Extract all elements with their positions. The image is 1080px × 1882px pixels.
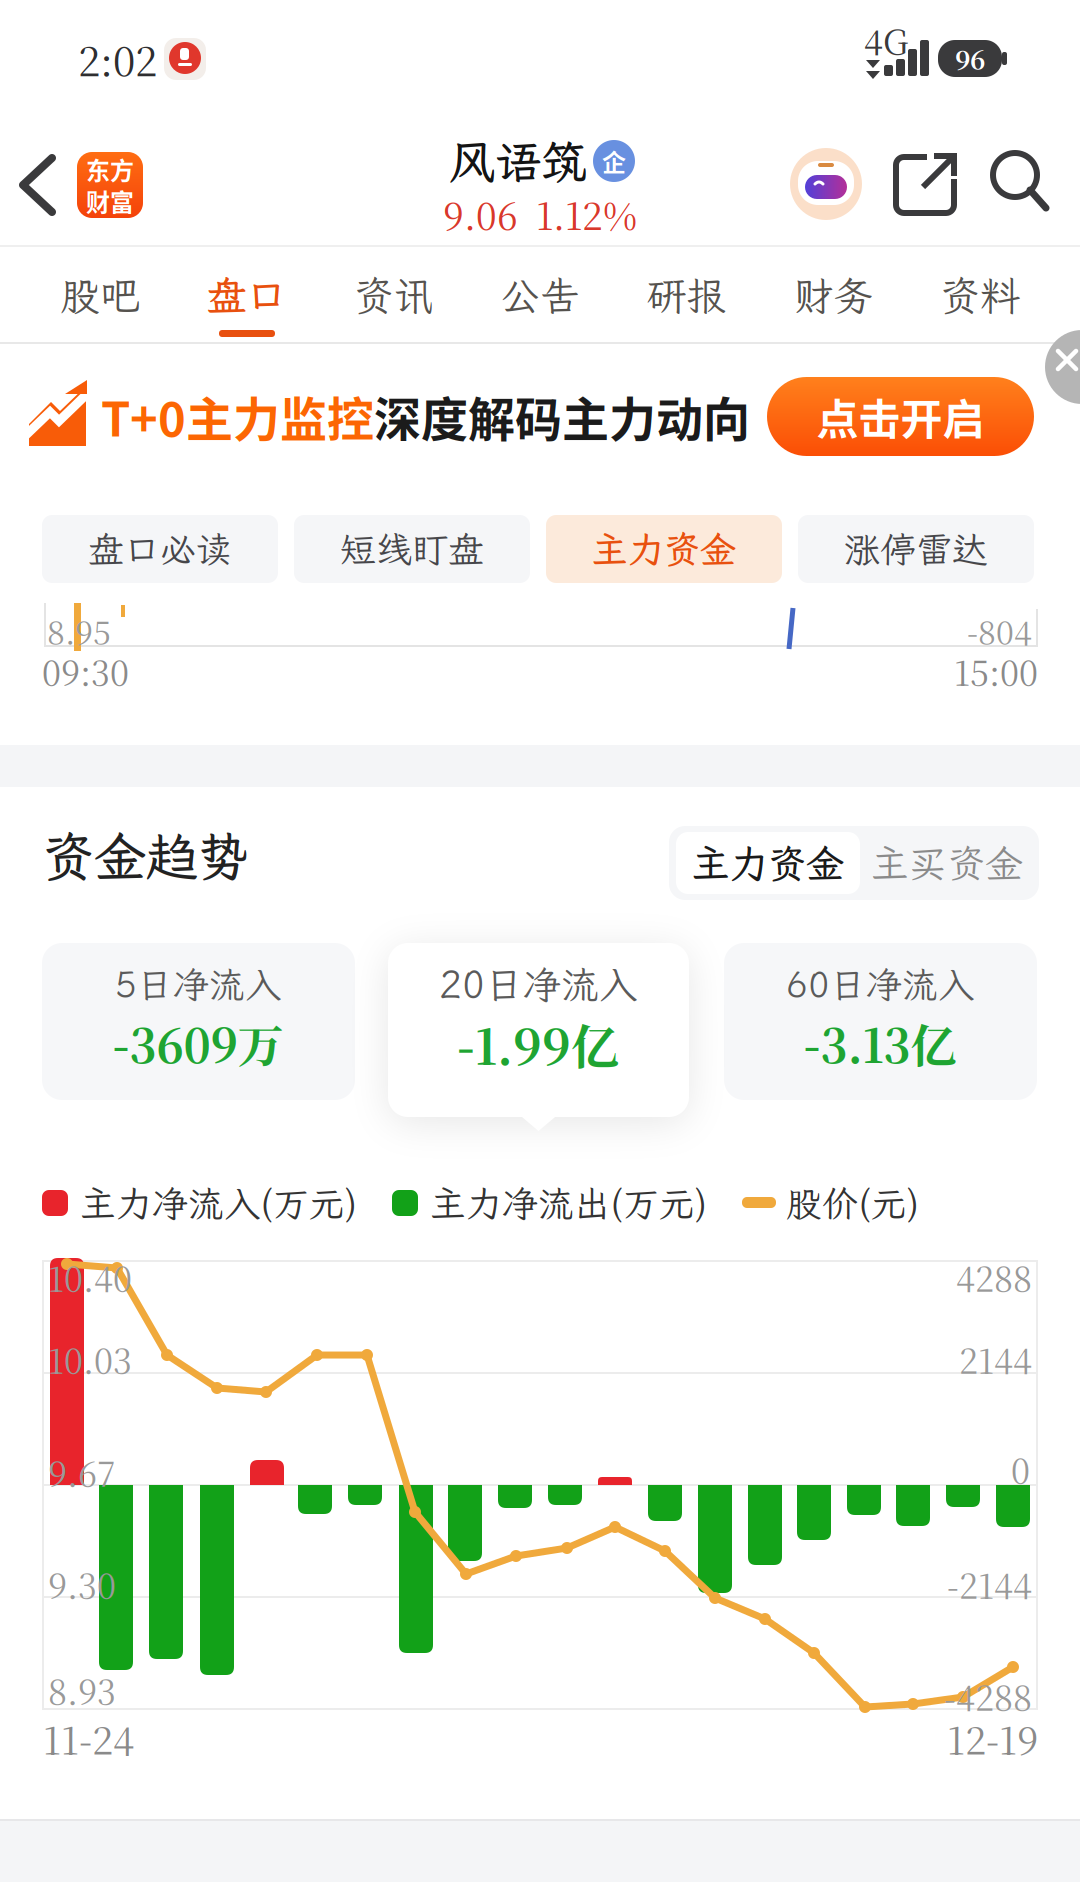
staticText: 8.93 — [48, 1666, 116, 1714]
button[interactable]: 盘口必读 — [42, 515, 278, 583]
staticText: -804 — [967, 608, 1032, 654]
staticText: 涨停雷达 — [844, 525, 988, 573]
button[interactable]: 资讯 — [320, 247, 467, 343]
button[interactable]: Back — [8, 146, 68, 224]
staticText: 研报 — [647, 269, 727, 321]
staticText: 盘口必读 — [88, 525, 232, 573]
staticText: 10.03 — [48, 1335, 132, 1383]
staticText: 风语筑 — [449, 131, 587, 191]
staticText: 12-19 — [947, 1711, 1038, 1765]
staticText: 盘口 — [207, 269, 287, 321]
staticText: -4288 — [944, 1672, 1032, 1720]
staticText: 20日净流入 — [439, 959, 637, 1009]
button[interactable]: 关闭 — [1045, 330, 1080, 404]
staticText: 主买资金 — [871, 838, 1023, 888]
button[interactable]: 资料 — [906, 247, 1053, 343]
staticText: 4G — [864, 16, 908, 64]
staticText: 5日净流入 — [115, 960, 281, 1008]
button[interactable]: 公告 — [467, 247, 613, 343]
staticText: 资讯 — [353, 269, 433, 321]
staticText: 资料 — [940, 269, 1020, 321]
staticText: 96 — [955, 40, 985, 77]
staticText: 财富 — [86, 183, 134, 218]
button[interactable]: Search — [993, 153, 1051, 213]
staticText: -2144 — [947, 1560, 1032, 1608]
button[interactable]: 主力资金 — [546, 515, 782, 583]
staticText: 主力净流入(万元) — [80, 1179, 358, 1227]
staticText: 主力净流出(万元) — [430, 1179, 708, 1227]
staticText: 深度解码主力动向 — [374, 382, 750, 450]
button[interactable]: 涨停雷达 — [798, 515, 1034, 583]
staticText: 东方 — [86, 152, 134, 186]
button[interactable]: 主买资金 — [858, 832, 1036, 894]
button[interactable]: 股吧 — [27, 247, 173, 343]
staticText: -3.13亿 — [803, 1010, 956, 1076]
staticText: 财务 — [793, 269, 873, 321]
staticText: 0 — [1011, 1445, 1030, 1493]
button[interactable]: 点击开启 — [767, 377, 1034, 456]
staticText: 9.67 — [48, 1448, 116, 1496]
staticText: 资金趋势 — [42, 822, 250, 890]
staticText: 短线盯盘 — [340, 525, 484, 573]
button[interactable]: 5日净流入 — [42, 943, 355, 1100]
staticText: 11-24 — [43, 1711, 134, 1765]
staticText: 股价(元) — [786, 1179, 920, 1227]
staticText: 点击开启 — [816, 386, 984, 447]
staticText: -3609万 — [112, 1010, 283, 1076]
staticText: 15:00 — [954, 647, 1038, 695]
staticText: 主力资金 — [692, 838, 844, 888]
staticText: 2:02 — [78, 30, 157, 88]
staticText: 4288 — [956, 1253, 1032, 1301]
staticText: -1.99亿 — [457, 1009, 619, 1078]
button[interactable]: 盘口 — [173, 247, 320, 343]
staticText: 公告 — [500, 269, 580, 321]
staticText: 2144 — [959, 1335, 1032, 1383]
staticText: 9.30 — [48, 1560, 116, 1608]
button[interactable]: T+0主力监控 — [29, 385, 750, 447]
staticText: 主力资金 — [592, 525, 736, 573]
staticText: 60日净流入 — [786, 960, 974, 1008]
button[interactable]: 财务 — [760, 247, 906, 343]
staticText: 09:30 — [42, 647, 129, 695]
button[interactable]: 60日净流入 — [724, 943, 1037, 1100]
button[interactable]: 主力资金 — [676, 832, 860, 894]
button[interactable]: 20日净流入 — [388, 943, 689, 1133]
button[interactable]: Share — [896, 153, 958, 215]
button[interactable]: 东方财富 — [77, 152, 143, 218]
staticText: 9.06 1.12% — [443, 187, 637, 241]
staticText: 企 — [602, 144, 626, 178]
staticText: T+0主力监控 — [101, 382, 374, 450]
button[interactable]: 短线盯盘 — [294, 515, 530, 583]
staticText: 股吧 — [60, 269, 140, 321]
button[interactable]: 研报 — [613, 247, 760, 343]
staticText: 10.40 — [48, 1253, 132, 1301]
button[interactable]: 智能助手 — [790, 148, 862, 220]
staticText: 8.95 — [47, 608, 111, 654]
